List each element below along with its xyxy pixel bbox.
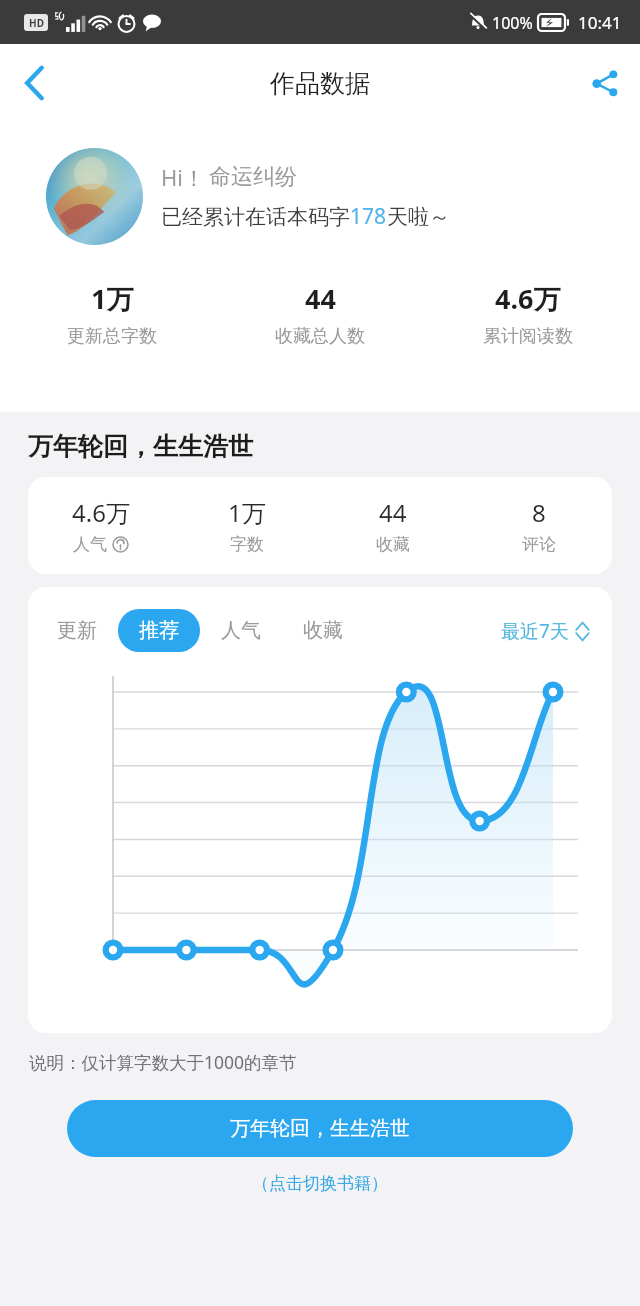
staticText: 10:41 [578,11,622,34]
staticText: 人气 [221,618,261,643]
staticText: 说明：仅计算字数大于1000的章节 [29,1050,297,1074]
button[interactable]: 1万 [174,496,320,555]
button[interactable]: Back [0,48,70,118]
button[interactable]: 44 [216,280,424,348]
staticText: 收藏 [303,618,343,643]
button[interactable]: 4.6万 [424,280,632,348]
staticText: 178 [350,202,387,231]
staticText: （点击切换书籍） [252,1173,388,1194]
button[interactable]: 推荐 [118,609,200,652]
staticText: Hi！ [161,162,205,192]
button[interactable]: 8 [466,496,612,555]
staticText: 更新 [57,618,97,643]
staticText: 累计阅读数 [483,325,573,348]
staticText: 命运纠纷 [209,163,297,191]
staticText: 万年轮回，生生浩世 [28,431,253,462]
button[interactable]: 最近7天 [497,612,594,650]
staticText: 推荐 [139,618,179,643]
button[interactable]: 万年轮回，生生浩世 [67,1100,573,1157]
button[interactable]: Share [570,48,640,118]
button[interactable]: （点击切换书籍） [242,1169,398,1198]
button[interactable]: 人气 [200,609,282,652]
staticText: 4.6万 [495,280,561,317]
staticText: 44 [305,280,336,317]
button[interactable]: 收藏 [282,609,364,652]
staticText: 4.6万 [72,496,130,529]
staticText: 收藏 [376,534,410,555]
staticText: 评论 [522,534,556,555]
button[interactable]: 1万 [8,280,216,348]
button[interactable]: 4.6万 [28,496,174,555]
staticText: 作品数据 [270,68,370,99]
staticText: 44 [379,496,407,529]
button[interactable]: 44 [320,496,466,555]
staticText: 1万 [91,280,134,317]
staticText: 天啦～ [387,204,450,230]
staticText: HD [29,16,44,30]
button[interactable]: 更新 [36,609,118,652]
staticText: 8 [532,496,546,529]
staticText: 更新总字数 [67,325,157,348]
staticText: 1万 [228,496,266,529]
staticText: 收藏总人数 [275,325,365,348]
staticText: 万年轮回，生生浩世 [230,1116,410,1141]
staticText: 最近7天 [501,618,569,644]
staticText: 字数 [230,534,264,555]
staticText: 人气 [73,534,107,555]
staticText: 100% [492,12,533,34]
staticText: 已经累计在话本码字 [161,204,350,230]
